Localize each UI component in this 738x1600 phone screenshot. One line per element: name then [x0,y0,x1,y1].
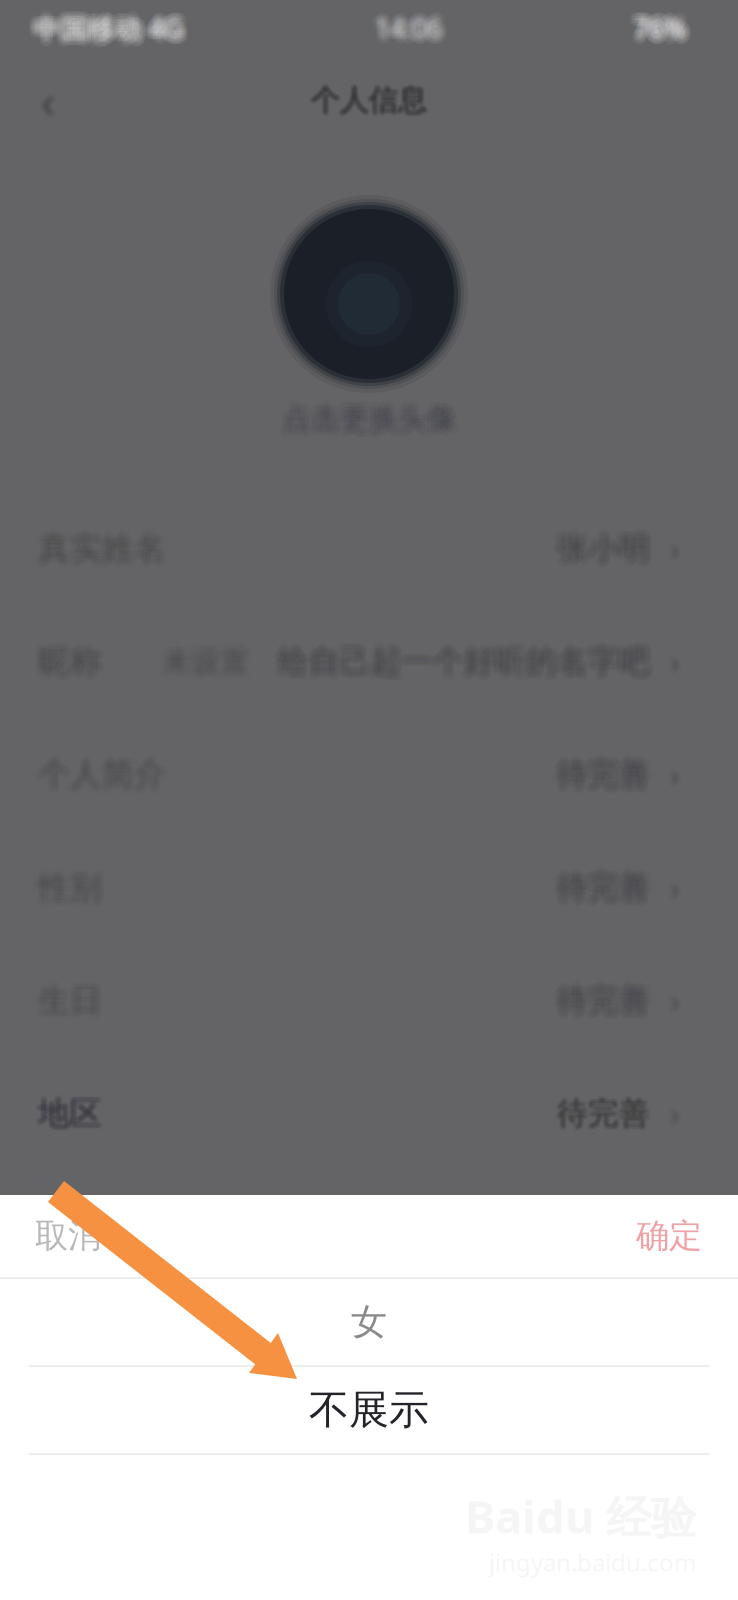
button[interactable]: 更换头像 [0,203,738,385]
staticText: › [671,1095,681,1137]
staticText: ‹ [37,70,52,133]
staticText: 张小明 [559,527,652,565]
staticText: 个人信息 [312,81,428,117]
staticText: 地区 [40,1093,104,1133]
staticText: 张小明 [557,531,650,569]
staticText: 待完善 [557,977,650,1014]
staticText: 昵称 [35,641,99,680]
staticText: 给自己起一个好听的名字吧 [276,640,648,678]
staticText: › [672,528,682,570]
staticText: › [674,1094,684,1136]
staticText: › [669,641,679,684]
staticText: 14:06 [375,4,442,40]
staticText: › [667,637,677,680]
staticText: 个人简介 [40,759,168,799]
staticText: › [667,982,677,1025]
staticText: 待完善 [559,1094,652,1132]
staticText: 真实姓名 [41,530,169,569]
staticText: › [668,637,678,679]
staticText: 性别 [36,870,100,909]
staticText: 76% [630,9,682,45]
staticText: 昵称 [41,643,105,682]
staticText: › [666,639,676,681]
staticText: 待完善 [557,1092,650,1129]
staticText: 给自己起一个好听的名字吧 [277,640,649,677]
staticText: 76% [638,9,690,45]
staticText: 个人信息 [311,85,427,121]
staticText: 张小明 [560,530,653,568]
button[interactable]: 取消 [0,1195,131,1277]
staticText: 个人信息 [313,84,429,120]
staticText: 性别 [33,866,97,905]
staticText: › [674,755,684,797]
staticText: › [668,641,678,683]
staticText: › [672,755,682,797]
staticText: › [671,528,681,570]
staticText: 待完善 [557,864,650,901]
staticText: 待完善 [558,869,651,907]
staticText: 待完善 [556,757,649,794]
staticText: 未设置 [166,648,253,684]
staticText: 给自己起一个好听的名字吧 [277,644,649,681]
staticText: › [671,1091,681,1134]
staticText: 昵称 [36,637,100,677]
staticText: 待完善 [557,874,650,911]
staticText: 待完善 [558,1096,651,1134]
staticText: ‹ [40,66,55,129]
staticText: 生日 [43,983,107,1022]
staticText: 14:06 [379,14,446,50]
staticText: 未设置 [160,649,247,685]
staticText: 地区 [37,1093,101,1132]
staticText: 生日 [40,976,104,1016]
staticText: › [668,755,678,797]
staticText: 待完善 [557,983,650,1021]
staticText: 待完善 [560,865,653,903]
staticText: 真实姓名 [33,529,161,568]
staticText: 昵称 [39,645,103,684]
staticText: 待完善 [557,757,650,795]
staticText: 14:06 [376,14,443,49]
staticText: › [670,983,680,1026]
staticText: 个人简介 [41,754,169,793]
staticText: 个人信息 [311,79,427,115]
staticText: 昵称 [39,641,103,680]
staticText: 76% [632,5,684,40]
staticText: 张小明 [558,529,651,566]
staticText: 待完善 [555,1095,648,1133]
staticText: 待完善 [554,1096,647,1133]
staticText: 点击更换头像 [280,399,454,435]
staticText: 待完善 [559,1095,652,1133]
staticText: 真实姓名 [38,527,166,567]
button[interactable]: 确定 [606,1195,738,1277]
staticText: › [669,754,679,797]
staticText: 点击更换头像 [280,396,454,432]
staticText: 待完善 [555,1094,648,1132]
staticText: 个人信息 [308,81,424,117]
staticText: › [668,754,678,796]
staticText: 真实姓名 [43,527,171,566]
staticText: › [666,752,676,794]
staticText: 中国移动 4G [35,7,184,42]
button[interactable]: 地区 [0,1057,738,1170]
staticText: ‹ [40,72,55,136]
staticText: 待完善 [556,1096,649,1134]
staticText: 待完善 [562,982,655,1019]
staticText: › [668,977,678,1020]
staticText: 14:06 [377,5,444,40]
staticText: › [671,751,681,793]
staticText: › [669,979,679,1021]
staticText: 真实姓名 [43,529,171,568]
staticText: ‹ [44,70,59,133]
staticText: › [667,869,677,912]
staticText: 张小明 [552,532,645,569]
staticText: 76% [632,16,684,51]
staticText: 待完善 [552,980,645,1017]
staticText: › [671,754,681,796]
staticText: › [669,869,679,911]
button[interactable]: 昵称 [0,605,738,718]
